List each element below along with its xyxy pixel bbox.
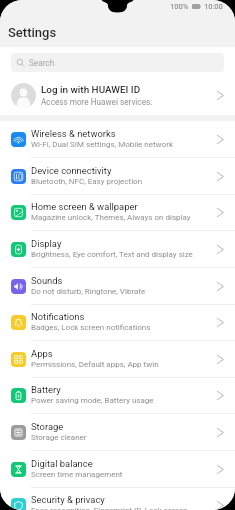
staticText: Display: [31, 238, 62, 249]
staticText: Permissions, Default apps, App twin: [31, 360, 159, 369]
button[interactable]: Wireless & networks: [0, 121, 235, 158]
button[interactable]: Digital balance: [0, 451, 235, 488]
staticText: Log in with HUAWEI ID: [41, 84, 141, 96]
button[interactable]: Search: [11, 53, 224, 72]
staticText: Power saving mode, Battery usage: [31, 396, 154, 405]
staticText: Notifications: [31, 311, 85, 322]
staticText: Search: [29, 58, 55, 68]
button[interactable]: Storage: [0, 414, 235, 451]
staticText: Wireless & networks: [31, 128, 116, 139]
button[interactable]: Device connectivity: [0, 158, 235, 195]
staticText: Face recognition, Fingerprint ID, Lock s…: [31, 506, 188, 510]
staticText: Digital balance: [31, 458, 93, 469]
staticText: Storage cleaner: [31, 433, 87, 442]
staticText: Storage: [31, 421, 64, 432]
staticText: Security & privacy: [31, 494, 105, 505]
button[interactable]: Home screen & wallpaper: [0, 194, 235, 231]
button[interactable]: Display: [0, 231, 235, 268]
button[interactable]: Notifications: [0, 304, 235, 341]
staticText: Bluetooth, NFC, Easy projection: [31, 177, 143, 186]
staticText: Badges, Lock screen notifications: [31, 323, 151, 332]
staticText: 10:00: [204, 2, 223, 11]
staticText: Magazine unlock, Themes, Always on displ…: [31, 213, 191, 222]
staticText: Home screen & wallpaper: [31, 201, 138, 212]
staticText: Apps: [31, 348, 53, 359]
staticText: Sounds: [31, 275, 63, 286]
staticText: Battery: [31, 384, 61, 395]
staticText: Device connectivity: [31, 165, 112, 176]
staticText: Settings: [8, 25, 57, 40]
button[interactable]: Apps: [0, 341, 235, 378]
button[interactable]: Battery: [0, 377, 235, 414]
button[interactable]: Log in with HUAWEI ID: [0, 76, 235, 115]
staticText: 100%: [170, 2, 189, 11]
staticText: Access more Huawei services.: [41, 97, 153, 107]
staticText: Brightness, Eye comfort, Text and displa…: [31, 250, 193, 259]
button[interactable]: Sounds: [0, 268, 235, 305]
button[interactable]: Security & privacy: [0, 487, 235, 510]
staticText: Wi-Fi, Dual SIM settings, Mobile network: [31, 140, 173, 149]
staticText: Screen time management: [31, 470, 123, 479]
staticText: Do not disturb, Ringtone, Vibrate: [31, 287, 146, 296]
